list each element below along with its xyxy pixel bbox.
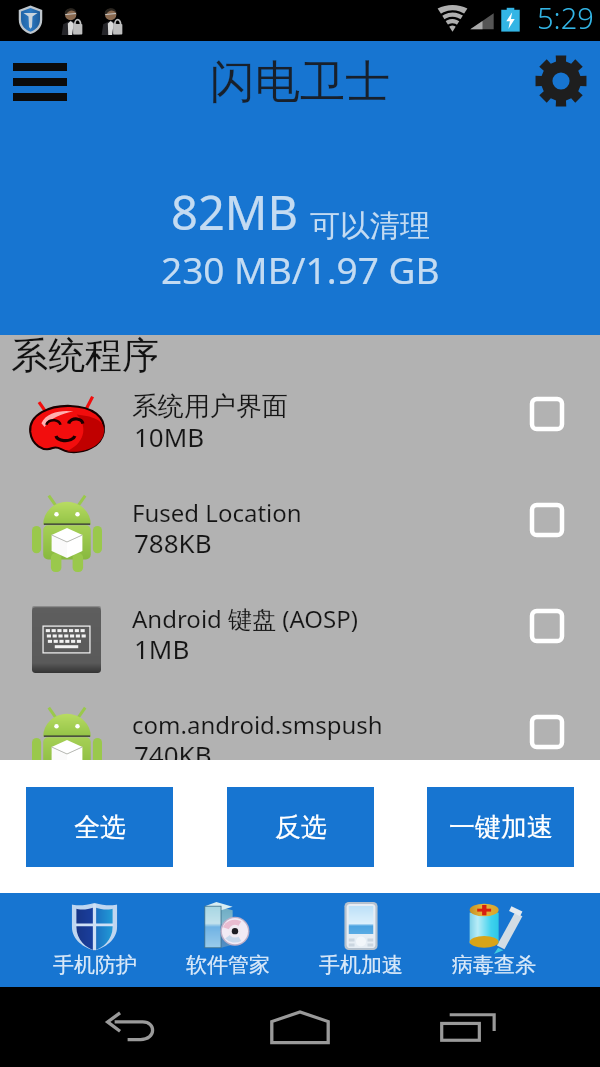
- staticText: 10MB: [134, 419, 205, 454]
- button[interactable]: Menu: [3, 34, 77, 128]
- button[interactable]: Back: [96, 998, 170, 1056]
- staticText: 病毒查杀: [452, 952, 536, 978]
- staticText: 82MB: [171, 180, 298, 244]
- button[interactable]: Recents: [431, 998, 505, 1056]
- staticText: 反选: [275, 811, 327, 844]
- staticText: com.android.smspush: [132, 708, 383, 741]
- button[interactable]: 手机加速: [294, 893, 427, 987]
- staticText: 5:29: [537, 0, 594, 37]
- staticText: 788KB: [134, 525, 212, 560]
- button[interactable]: 病毒查杀: [427, 893, 560, 987]
- staticText: 手机加速: [319, 952, 403, 978]
- staticText: 一键加速: [449, 811, 553, 844]
- staticText: 230 MB/1.97 GB: [161, 244, 440, 294]
- button[interactable]: 一键加速: [427, 787, 574, 867]
- button[interactable]: Android 键盘 (AOSP): [0, 573, 600, 679]
- button[interactable]: com.android.smspush: [0, 679, 600, 785]
- button[interactable]: Home: [263, 998, 337, 1056]
- button[interactable]: 全选: [26, 787, 173, 867]
- button[interactable]: 手机防护: [28, 893, 161, 987]
- staticText: 系统用户界面: [132, 390, 288, 423]
- staticText: 软件管家: [186, 952, 270, 978]
- button[interactable]: 反选: [227, 787, 374, 867]
- staticText: Android 键盘 (AOSP): [132, 602, 359, 635]
- button[interactable]: Settings: [525, 34, 597, 128]
- staticText: 740KB: [134, 737, 212, 772]
- staticText: 1MB: [134, 631, 190, 666]
- staticText: Fused Location: [132, 496, 302, 529]
- staticText: 手机防护: [53, 952, 137, 978]
- button[interactable]: Fused Location: [0, 467, 600, 573]
- staticText: 可以清理: [310, 207, 430, 245]
- staticText: 闪电卫士: [210, 54, 390, 111]
- button[interactable]: 系统用户界面: [0, 361, 600, 467]
- staticText: 系统程序: [11, 332, 159, 379]
- button[interactable]: 软件管家: [161, 893, 294, 987]
- staticText: 全选: [74, 811, 126, 844]
